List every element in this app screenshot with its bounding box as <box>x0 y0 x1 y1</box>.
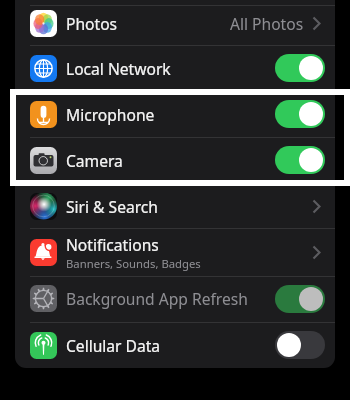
button[interactable]: Notifications <box>15 228 335 276</box>
staticText: All Photos <box>230 13 304 34</box>
button[interactable]: Toggle <box>275 285 325 313</box>
button[interactable]: Camera <box>15 137 335 183</box>
button[interactable]: Background App Refresh <box>15 276 335 321</box>
button[interactable]: Toggle <box>275 100 325 128</box>
button[interactable]: Toggle <box>275 331 325 359</box>
staticText: Local Network <box>66 58 171 79</box>
button[interactable]: Local Network <box>15 45 335 91</box>
staticText: Notifications <box>66 234 159 255</box>
button[interactable]: Toggle <box>275 146 325 174</box>
staticText: Siri & Search <box>66 196 158 217</box>
button[interactable]: Microphone <box>15 91 335 137</box>
button[interactable]: Toggle <box>275 54 325 82</box>
button[interactable]: Cellular Data <box>15 322 335 368</box>
staticText: Background App Refresh <box>66 288 248 309</box>
staticText: Photos <box>66 13 118 34</box>
button[interactable]: Siri & Search <box>15 183 335 229</box>
staticText: Microphone <box>66 104 155 125</box>
staticText: Banners, Sounds, Badges <box>66 256 201 271</box>
staticText: Cellular Data <box>66 335 161 356</box>
staticText: Camera <box>66 150 123 171</box>
button[interactable]: Photos <box>15 5 335 45</box>
